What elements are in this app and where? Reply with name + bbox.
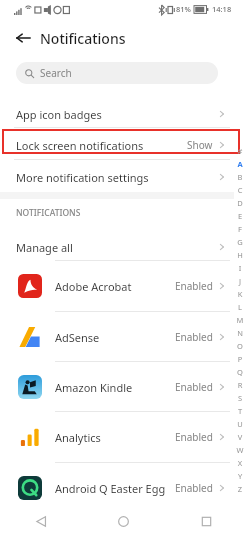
staticText: Analytics xyxy=(55,430,101,445)
button[interactable]: Home xyxy=(82,505,165,538)
staticText: U xyxy=(234,419,246,432)
staticText: I xyxy=(234,263,246,276)
staticText: E xyxy=(234,211,246,224)
staticText: Android Q Easter Egg xyxy=(55,481,166,496)
staticText: P xyxy=(234,354,246,367)
staticText: Search xyxy=(40,66,72,80)
button[interactable]: App icon badges xyxy=(0,101,234,127)
staticText: Notifications xyxy=(40,29,126,48)
button[interactable]: Back xyxy=(0,505,82,538)
button[interactable]: Lock screen notifications xyxy=(0,132,234,158)
button[interactable]: Amazon Kindle xyxy=(0,363,234,411)
staticText: D xyxy=(234,198,246,211)
staticText: O xyxy=(234,341,246,354)
staticText: Enabled xyxy=(175,279,213,293)
staticText: B xyxy=(234,172,246,185)
staticText: Lock screen notifications xyxy=(16,138,144,153)
staticText: Y xyxy=(234,471,246,484)
staticText: Amazon Kindle xyxy=(55,380,133,395)
staticText: NOTIFICATIONS xyxy=(16,207,81,219)
staticText: Enabled xyxy=(175,430,213,444)
staticText: S xyxy=(234,393,246,406)
staticText: V xyxy=(234,432,246,445)
button[interactable]: Search xyxy=(16,62,218,84)
staticText: H xyxy=(234,250,246,263)
staticText: App icon badges xyxy=(16,107,102,122)
staticText: C xyxy=(234,185,246,198)
staticText: L xyxy=(234,302,246,315)
staticText: F xyxy=(234,224,246,237)
button[interactable]: Back xyxy=(10,25,36,51)
staticText: M xyxy=(234,315,246,328)
staticText: X xyxy=(234,458,246,471)
button[interactable]: Analytics xyxy=(0,413,234,461)
staticText: Adobe Acrobat xyxy=(55,279,132,294)
staticText: Q xyxy=(234,367,246,380)
staticText: R xyxy=(234,380,246,393)
staticText: Enabled xyxy=(175,380,213,394)
button[interactable]: More notification settings xyxy=(0,164,234,190)
staticText: N xyxy=(234,328,246,341)
staticText: Show xyxy=(187,138,213,152)
staticText: More notification settings xyxy=(16,170,149,185)
staticText: Manage all xyxy=(16,240,73,255)
staticText: AdSense xyxy=(55,330,100,345)
staticText: 14:18 xyxy=(212,4,232,14)
staticText: J xyxy=(234,276,246,289)
staticText: T xyxy=(234,406,246,419)
staticText: K xyxy=(234,289,246,302)
staticText: G xyxy=(234,237,246,250)
staticText: # xyxy=(234,146,246,159)
button[interactable]: Alphabet index xyxy=(234,146,246,497)
staticText: W xyxy=(234,445,246,458)
staticText: Z xyxy=(234,484,246,497)
staticText: 81% xyxy=(176,4,191,14)
staticText: Enabled xyxy=(175,481,213,495)
button[interactable]: Recents xyxy=(165,505,248,538)
button[interactable]: Android Q Easter Egg xyxy=(0,464,234,512)
button[interactable]: Manage all xyxy=(0,234,234,260)
button[interactable]: AdSense xyxy=(0,313,234,361)
staticText: A xyxy=(234,159,246,172)
button[interactable]: Adobe Acrobat xyxy=(0,262,234,310)
staticText: Enabled xyxy=(175,330,213,344)
